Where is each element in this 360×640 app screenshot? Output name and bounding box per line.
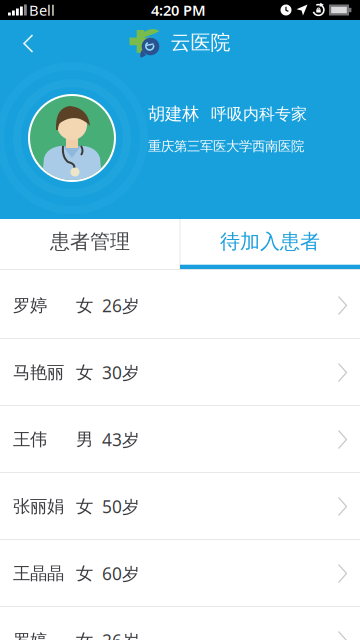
staticText: 50岁 xyxy=(102,495,139,518)
staticText: 张丽娟 xyxy=(13,496,64,517)
staticText: 男 xyxy=(76,429,93,450)
staticText: 女 xyxy=(76,630,93,640)
staticText: 罗婷 xyxy=(13,295,47,316)
button[interactable]: 张丽娟 xyxy=(0,473,360,540)
staticText: 罗婷 xyxy=(13,630,47,640)
staticText: 胡建林 xyxy=(148,103,199,125)
staticText: 女 xyxy=(76,563,93,584)
staticText: 云医院 xyxy=(170,30,230,55)
staticText: 女 xyxy=(76,362,93,383)
button[interactable]: 王伟 xyxy=(0,406,360,473)
staticText: 30岁 xyxy=(102,361,139,384)
staticText: Bell xyxy=(29,0,55,20)
staticText: 马艳丽 xyxy=(13,362,64,383)
button[interactable]: 马艳丽 xyxy=(0,339,360,406)
staticText: 待加入患者 xyxy=(220,229,320,254)
staticText: 26岁 xyxy=(102,629,139,640)
staticText: 60岁 xyxy=(102,562,139,585)
button[interactable]: 王晶晶 xyxy=(0,540,360,607)
staticText: 43岁 xyxy=(102,428,139,451)
staticText: 患者管理 xyxy=(50,229,130,254)
staticText: 4:20 PM xyxy=(151,0,206,20)
staticText: 呼吸内科专家 xyxy=(211,104,307,124)
staticText: 王晶晶 xyxy=(13,563,64,584)
staticText: 重庆第三军医大学西南医院 xyxy=(148,138,304,155)
button[interactable]: 待加入患者 xyxy=(180,216,360,267)
staticText: 女 xyxy=(76,295,93,316)
button[interactable]: 患者管理 xyxy=(0,216,180,267)
button[interactable]: 罗婷 xyxy=(0,607,360,640)
staticText: 26岁 xyxy=(102,294,139,317)
button[interactable]: Back xyxy=(7,22,52,65)
staticText: 女 xyxy=(76,496,93,517)
staticText: 王伟 xyxy=(13,429,47,450)
button[interactable]: 罗婷 xyxy=(0,272,360,339)
